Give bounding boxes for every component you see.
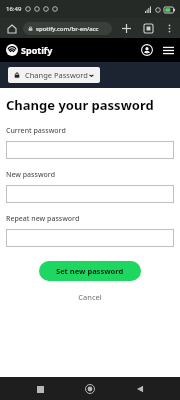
- button[interactable]: Back: [130, 379, 150, 399]
- button[interactable]: Menu: [161, 43, 175, 57]
- button[interactable]: [6, 229, 174, 247]
- button[interactable]: Recent apps: [30, 379, 50, 399]
- staticText: Current password: [6, 126, 66, 136]
- button[interactable]: Home: [4, 21, 19, 36]
- button[interactable]: Account: [140, 43, 154, 57]
- staticText: spotify.com/br-en/acc: [36, 25, 99, 33]
- button[interactable]: [6, 141, 174, 159]
- staticText: Change your password: [6, 96, 154, 114]
- button[interactable]: Tabs: [140, 20, 156, 36]
- staticText: 16:49: [6, 5, 22, 13]
- button[interactable]: Set new password: [39, 261, 141, 281]
- button[interactable]: Change Password: [8, 67, 100, 83]
- staticText: Repeat new password: [6, 214, 80, 224]
- button[interactable]: spotify.com/br-en/acc: [23, 22, 112, 35]
- button[interactable]: Home: [80, 379, 100, 399]
- staticText: Set new password: [56, 266, 124, 276]
- staticText: Spotify: [21, 44, 53, 56]
- staticText: New password: [6, 170, 56, 180]
- staticText: Cancel: [78, 292, 102, 302]
- button[interactable]: New tab: [118, 20, 134, 36]
- button[interactable]: More options: [161, 20, 177, 36]
- button[interactable]: Cancel: [75, 289, 105, 305]
- staticText: Change Password: [25, 70, 88, 80]
- button[interactable]: [6, 185, 174, 203]
